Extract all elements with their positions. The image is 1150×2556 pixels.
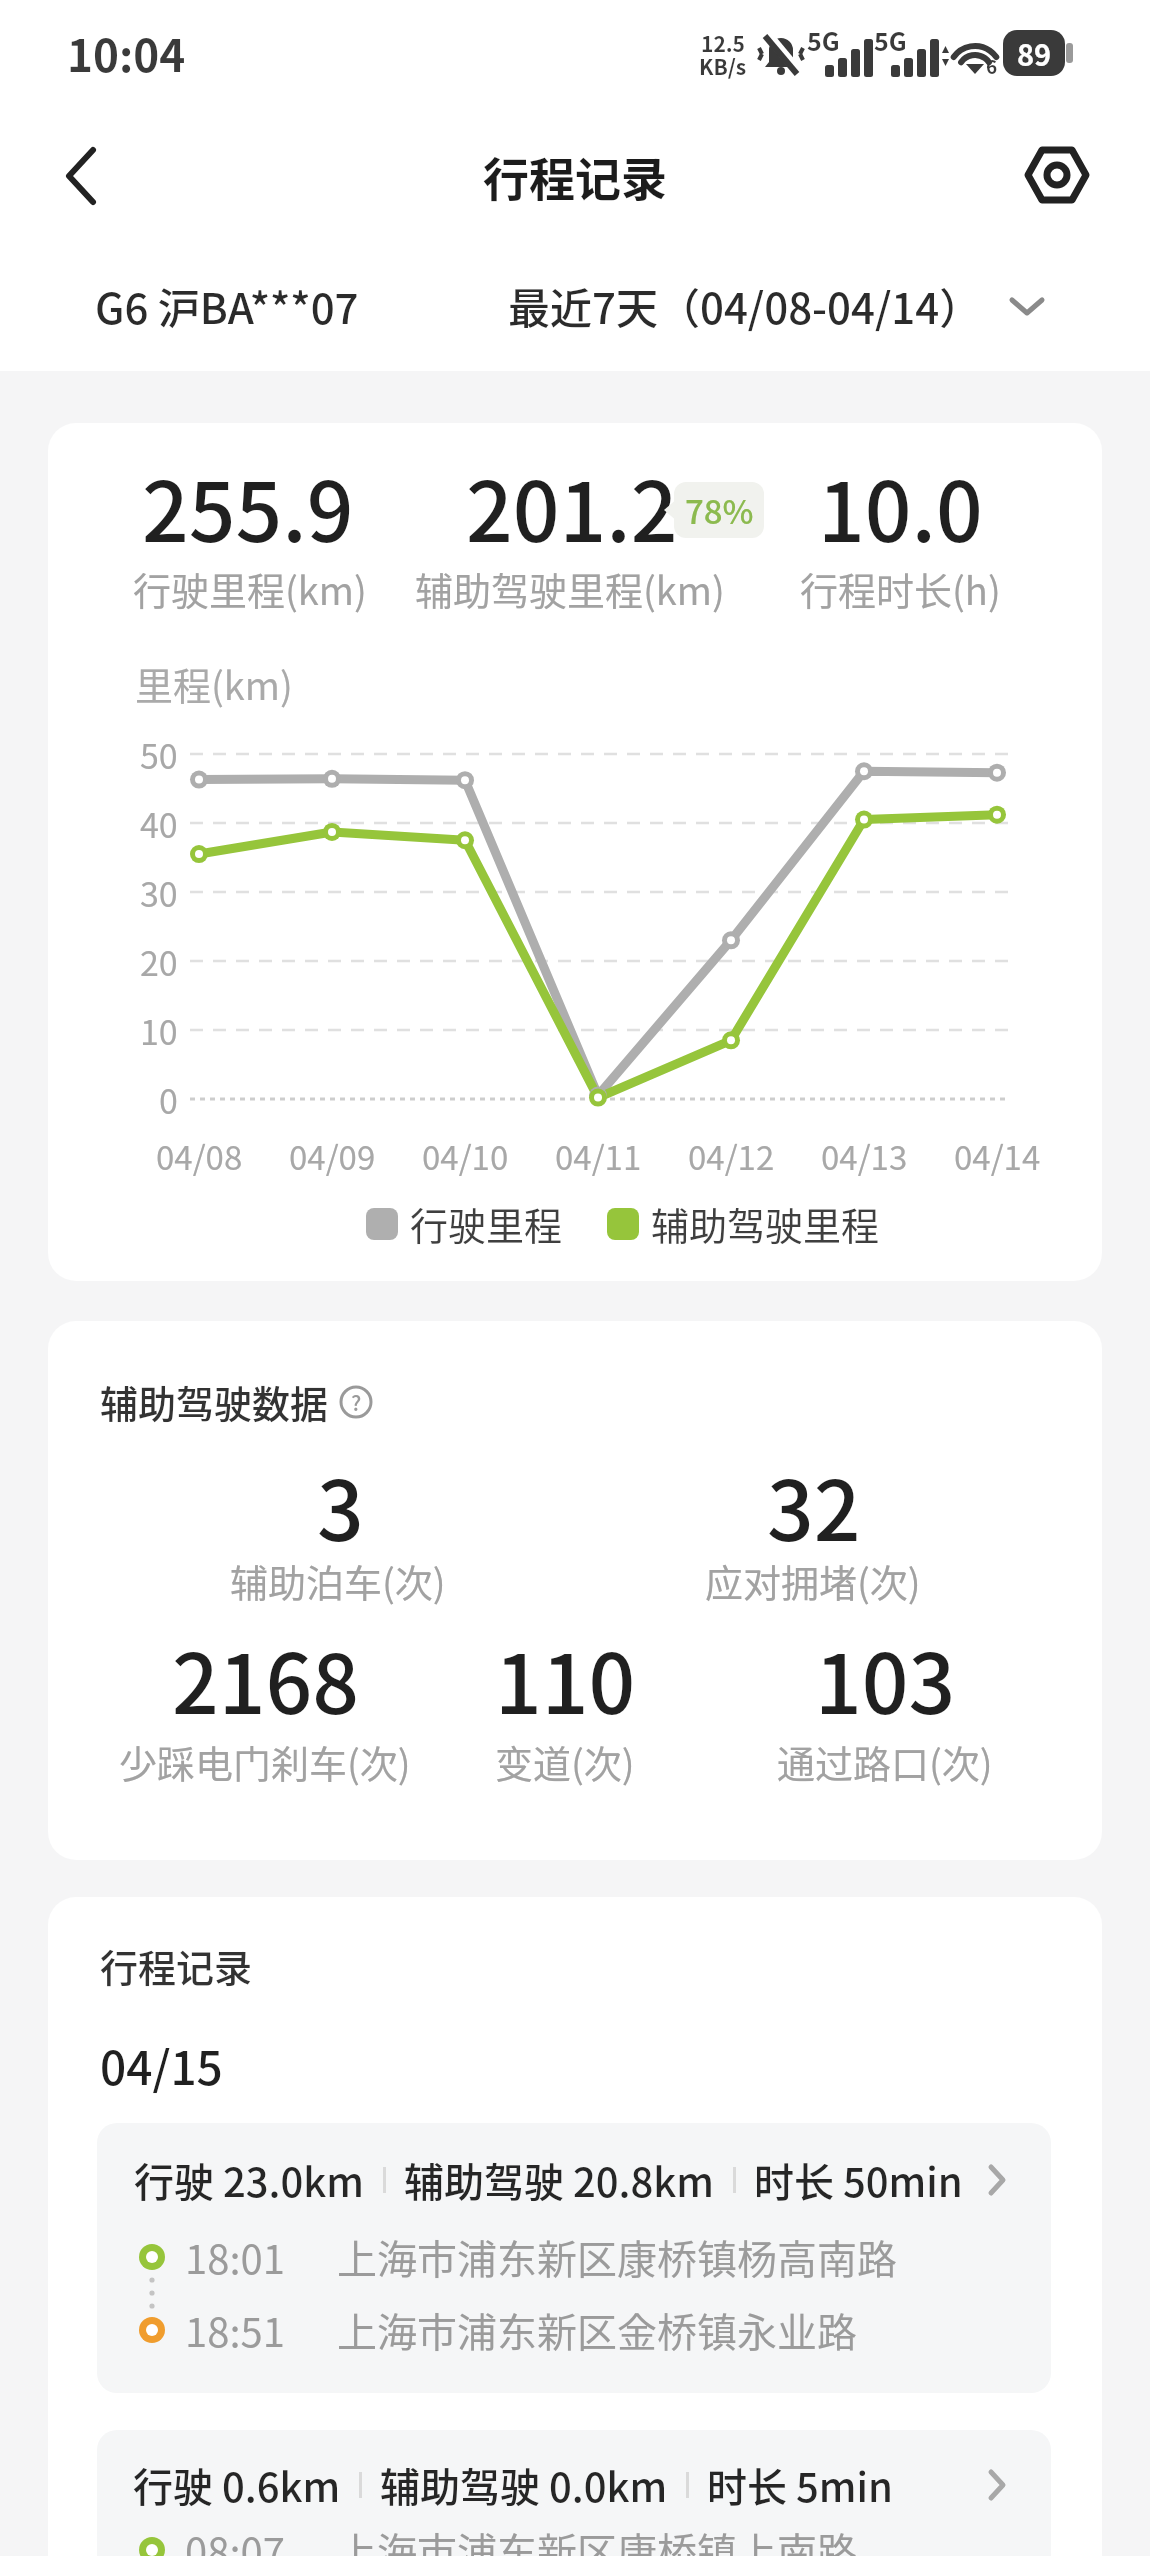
staticText: 04/08 — [156, 1132, 243, 1180]
staticText: 30 — [140, 868, 178, 917]
staticText: ? — [351, 1387, 362, 1417]
staticText: 04/14 — [954, 1132, 1041, 1180]
staticText: 辅助泊车(次) — [230, 1553, 446, 1608]
staticText: 通过路口(次) — [777, 1734, 993, 1789]
staticText: 里程(km) — [135, 656, 293, 711]
staticText: KB/s — [699, 51, 747, 81]
button[interactable]: 行驶 23.0km — [97, 2123, 1051, 2393]
staticText: 201.2 — [466, 447, 678, 566]
staticText: 上海市浦东新区金桥镇永业路 — [337, 2301, 857, 2359]
staticText: 辅助驾驶数据 — [100, 1374, 329, 1429]
staticText: 08:07 — [185, 2521, 285, 2556]
staticText: 上海市浦东新区康桥镇杨高南路 — [337, 2228, 897, 2286]
staticText: 少踩电门刹车(次) — [119, 1734, 411, 1789]
button[interactable]: 最近7天（04/08-04/14） — [508, 275, 982, 336]
staticText: 行驶里程(km) — [133, 561, 367, 616]
staticText: 18:51 — [185, 2301, 285, 2359]
staticText: 时长 5min — [707, 2456, 893, 2514]
staticText: 辅助驾驶 20.8km — [404, 2151, 715, 2209]
button[interactable] — [1025, 145, 1089, 205]
staticText: 10.0 — [818, 447, 983, 566]
staticText: 3 — [317, 1446, 364, 1565]
staticText: 103 — [815, 1619, 956, 1738]
staticText: 0 — [159, 1075, 178, 1124]
button[interactable] — [62, 146, 106, 206]
staticText: 行驶里程 — [410, 1196, 563, 1251]
staticText: 40 — [140, 799, 178, 848]
staticText: 应对拥堵(次) — [705, 1553, 921, 1608]
staticText: 变道(次) — [495, 1734, 635, 1789]
staticText: 行程记录 — [100, 1938, 253, 1993]
staticText: 行驶 0.6km — [133, 2456, 341, 2514]
staticText: 最近7天（04/08-04/14） — [508, 275, 982, 336]
staticText: 04/10 — [422, 1132, 509, 1180]
staticText: 04/12 — [688, 1132, 775, 1180]
staticText: 6 — [986, 52, 998, 80]
staticText: 12.5 — [701, 28, 745, 58]
staticText: 辅助驾驶里程 — [651, 1196, 880, 1251]
staticText: G6 沪BA***07 — [95, 275, 359, 336]
staticText: 10:04 — [67, 21, 186, 85]
staticText: 18:01 — [185, 2228, 285, 2286]
staticText: 辅助驾驶 0.0km — [380, 2456, 668, 2514]
staticText: 89 — [1017, 32, 1052, 74]
staticText: 10 — [140, 1006, 178, 1055]
button[interactable]: 行驶 0.6km — [97, 2430, 1051, 2556]
staticText: 行程记录 — [483, 143, 667, 210]
staticText: 上海市浦东新区康桥镇上南路 — [337, 2521, 857, 2556]
staticText: 时长 50min — [754, 2151, 963, 2209]
staticText: 2168 — [172, 1619, 359, 1738]
staticText: 255.9 — [142, 447, 354, 566]
staticText: 04/13 — [821, 1132, 908, 1180]
staticText: 04/11 — [555, 1132, 642, 1180]
staticText: 辅助驾驶里程(km) — [415, 561, 725, 616]
staticText: 110 — [495, 1619, 636, 1738]
staticText: 5G — [874, 22, 907, 58]
staticText: 行程时长(h) — [800, 561, 1001, 616]
staticText: 20 — [140, 937, 178, 986]
staticText: 32 — [767, 1446, 861, 1565]
staticText: 行驶 23.0km — [134, 2151, 365, 2209]
staticText: 78% — [685, 486, 754, 534]
staticText: 04/09 — [289, 1132, 376, 1180]
staticText: 5G — [807, 22, 840, 58]
staticText: 04/15 — [100, 2032, 223, 2099]
staticText: 50 — [140, 730, 178, 779]
button[interactable]: G6 沪BA***07 — [95, 275, 359, 336]
